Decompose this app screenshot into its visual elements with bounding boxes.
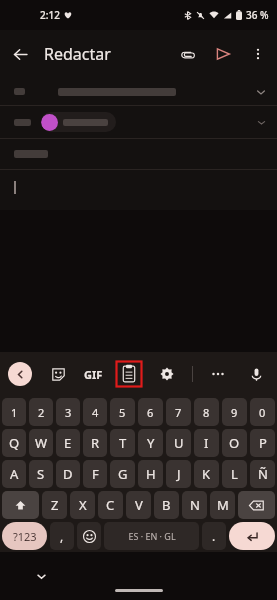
- button[interactable]: GIF: [84, 361, 103, 387]
- button[interactable]: Voice input: [243, 361, 269, 387]
- button[interactable]: Hide keyboard: [30, 565, 52, 587]
- staticText: 36 %: [246, 8, 269, 22]
- button[interactable]: 5: [110, 398, 135, 426]
- staticText: 1: [11, 405, 18, 420]
- button[interactable]: H: [138, 460, 163, 488]
- button[interactable]: U: [166, 429, 191, 457]
- staticText: T: [119, 434, 127, 452]
- staticText: ES · EN · GL: [128, 530, 176, 542]
- button[interactable]: K: [194, 460, 219, 488]
- staticText: I: [204, 434, 209, 452]
- button[interactable]: Settings: [154, 361, 180, 387]
- button[interactable]: Clipboard: [116, 361, 142, 387]
- button[interactable]: G: [110, 460, 135, 488]
- button[interactable]: N: [182, 491, 207, 519]
- button[interactable]: X: [70, 491, 95, 519]
- staticText: E: [64, 434, 72, 452]
- staticText: H: [146, 465, 156, 483]
- button[interactable]: D: [56, 460, 80, 488]
- staticText: Redactar: [44, 43, 111, 65]
- button[interactable]: 6: [138, 398, 163, 426]
- button[interactable]: Enter: [229, 522, 275, 550]
- staticText: U: [174, 434, 184, 452]
- button[interactable]: ,: [50, 522, 74, 550]
- button[interactable]: 9: [222, 398, 247, 426]
- button[interactable]: P: [250, 429, 275, 457]
- staticText: 9: [231, 405, 238, 420]
- staticText: 8: [203, 405, 210, 420]
- button[interactable]: Close toolbar: [8, 362, 32, 386]
- button[interactable]: I: [194, 429, 219, 457]
- button[interactable]: Ñ: [250, 460, 275, 488]
- button[interactable]: W: [29, 429, 53, 457]
- button[interactable]: V: [126, 491, 151, 519]
- button[interactable]: Send: [205, 36, 241, 72]
- staticText: C: [106, 496, 115, 514]
- staticText: A: [10, 465, 19, 483]
- staticText: V: [135, 496, 143, 514]
- staticText: Y: [147, 434, 155, 452]
- staticText: 2:12: [40, 8, 60, 22]
- staticText: 7: [175, 405, 182, 420]
- button[interactable]: 1: [2, 398, 26, 426]
- staticText: S: [37, 465, 45, 483]
- staticText: Z: [51, 496, 59, 514]
- button[interactable]: Attach file: [169, 36, 205, 72]
- staticText: R: [91, 434, 100, 452]
- staticText: Ñ: [258, 465, 268, 483]
- button[interactable]: More options: [241, 37, 275, 71]
- staticText: GIF: [84, 367, 103, 382]
- button[interactable]: More: [205, 361, 231, 387]
- button[interactable]: Shift: [2, 491, 39, 519]
- button[interactable]: Space: [104, 522, 199, 550]
- button[interactable]: Z: [42, 491, 67, 519]
- staticText: N: [190, 496, 200, 514]
- button[interactable]: Stickers: [45, 361, 71, 387]
- button[interactable]: 2: [29, 398, 53, 426]
- button[interactable]: B: [154, 491, 179, 519]
- staticText: B: [162, 496, 171, 514]
- staticText: J: [177, 465, 181, 483]
- staticText: M: [217, 496, 229, 514]
- button[interactable]: [0, 106, 277, 138]
- button[interactable]: M: [210, 491, 235, 519]
- button[interactable]: 8: [194, 398, 219, 426]
- staticText: X: [79, 496, 87, 514]
- button[interactable]: Y: [138, 429, 163, 457]
- staticText: 6: [147, 405, 154, 420]
- button[interactable]: 7: [166, 398, 191, 426]
- button[interactable]: 0: [250, 398, 275, 426]
- button[interactable]: ?123: [2, 522, 47, 550]
- button[interactable]: O: [222, 429, 247, 457]
- staticText: 0: [259, 405, 266, 420]
- button[interactable]: [0, 139, 277, 169]
- staticText: L: [231, 465, 238, 483]
- button[interactable]: T: [110, 429, 135, 457]
- button[interactable]: [0, 78, 277, 105]
- button[interactable]: Back: [0, 34, 40, 74]
- button[interactable]: 4: [83, 398, 107, 426]
- staticText: 5: [119, 405, 126, 420]
- staticText: .: [212, 528, 216, 544]
- button[interactable]: F: [83, 460, 107, 488]
- staticText: F: [92, 465, 99, 483]
- button[interactable]: E: [56, 429, 80, 457]
- button[interactable]: S: [29, 460, 53, 488]
- button[interactable]: L: [222, 460, 247, 488]
- staticText: ?123: [13, 529, 37, 544]
- staticText: 2: [38, 405, 45, 420]
- button[interactable]: J: [166, 460, 191, 488]
- staticText: G: [118, 465, 128, 483]
- button[interactable]: R: [83, 429, 107, 457]
- button[interactable]: Q: [2, 429, 26, 457]
- button[interactable]: Emoji: [77, 522, 101, 550]
- button[interactable]: A: [2, 460, 26, 488]
- staticText: P: [259, 434, 267, 452]
- button[interactable]: C: [98, 491, 123, 519]
- staticText: K: [202, 465, 211, 483]
- staticText: W: [35, 434, 48, 452]
- button[interactable]: 3: [56, 398, 80, 426]
- button[interactable]: Backspace: [238, 491, 275, 519]
- button[interactable]: .: [202, 522, 226, 550]
- staticText: Q: [9, 434, 20, 452]
